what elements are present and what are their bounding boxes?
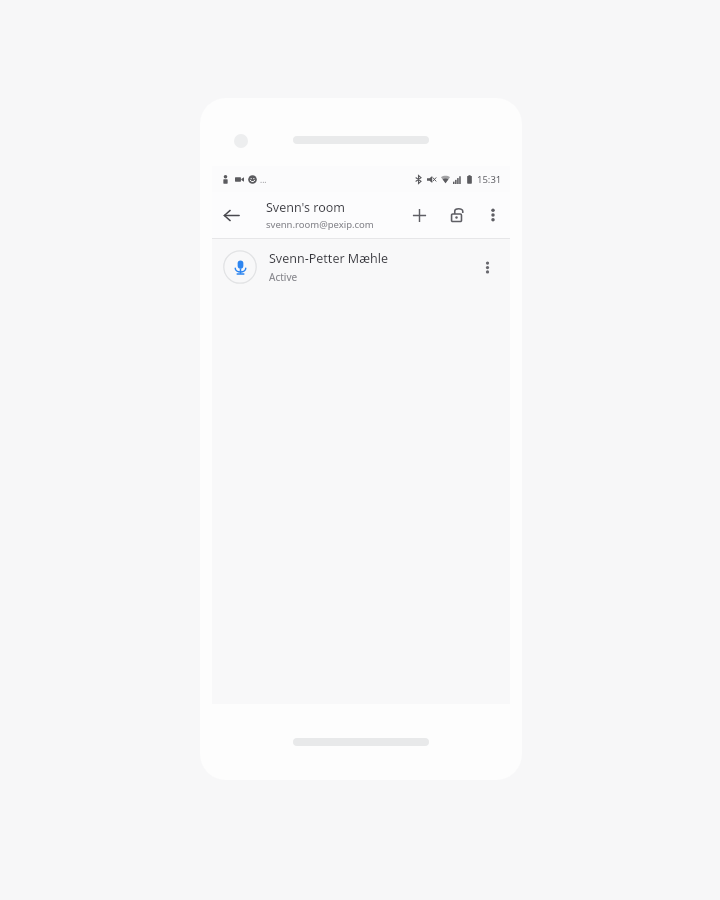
staticText: Svenn's room bbox=[266, 199, 345, 216]
button[interactable]: Svenn-Petter Mæhle bbox=[212, 239, 510, 295]
button[interactable]: Participant options bbox=[470, 250, 504, 284]
button[interactable]: Back bbox=[212, 196, 250, 234]
button[interactable]: Add participant bbox=[400, 196, 438, 234]
staticText: Active bbox=[269, 270, 298, 284]
button[interactable]: Lock room bbox=[438, 196, 476, 234]
staticText: Svenn-Petter Mæhle bbox=[269, 250, 388, 267]
staticText: svenn.room@pexip.com bbox=[266, 218, 374, 231]
button[interactable]: More options bbox=[476, 198, 510, 232]
staticText: 15:31 bbox=[477, 173, 502, 186]
staticText: ... bbox=[260, 174, 267, 185]
